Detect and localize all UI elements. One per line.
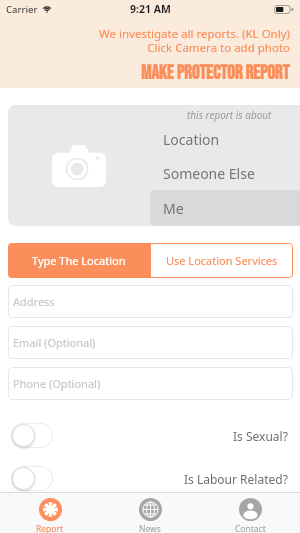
staticText: Address	[13, 294, 55, 309]
staticText: Report	[36, 523, 64, 533]
staticText: Location	[163, 130, 220, 149]
button[interactable]: Me	[150, 190, 300, 226]
button[interactable]: Address	[8, 285, 293, 318]
staticText: Email (Optional)	[13, 335, 96, 350]
button[interactable]: Add photo	[8, 105, 150, 226]
button[interactable]: Use Location Services	[150, 243, 293, 278]
button[interactable]: Email (Optional)	[8, 326, 293, 359]
button[interactable]: Report	[0, 493, 100, 533]
staticText: Phone (Optional)	[13, 376, 101, 391]
staticText: News	[139, 523, 161, 533]
button[interactable]: Phone (Optional)	[8, 367, 293, 400]
staticText: We investigate all reports. (KL Only) Cl…	[99, 26, 290, 55]
staticText: Someone Else	[163, 164, 255, 183]
staticText: Is Labour Related?	[184, 471, 288, 487]
button[interactable]: Is Sexual?	[11, 423, 53, 448]
staticText: Contact	[235, 523, 266, 533]
button[interactable]: Location	[150, 123, 300, 156]
staticText: MAKE PROTECTOR REPORT	[141, 62, 290, 85]
staticText: 9:21 AM	[130, 2, 171, 16]
button[interactable]: Someone Else	[150, 156, 300, 190]
staticText: Me	[163, 199, 184, 218]
button[interactable]: Contact	[200, 493, 300, 533]
staticText: Is Sexual?	[233, 428, 288, 444]
staticText: Type The Location	[32, 253, 126, 268]
button[interactable]: Is Labour Related?	[11, 466, 53, 491]
staticText: Carrier	[6, 3, 38, 16]
button[interactable]: Type The Location	[8, 243, 150, 278]
button[interactable]: News	[100, 493, 200, 533]
staticText: Use Location Services	[166, 253, 278, 268]
staticText: this report is about	[187, 108, 272, 122]
